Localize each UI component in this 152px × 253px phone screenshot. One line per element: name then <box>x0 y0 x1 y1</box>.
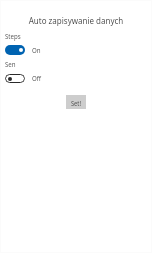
button[interactable]: Steps switch, On <box>5 45 42 55</box>
staticText: Off <box>32 74 41 83</box>
staticText: On <box>32 46 41 55</box>
button[interactable]: Set! <box>66 95 86 109</box>
button[interactable]: Sen switch, Off <box>5 74 42 83</box>
staticText: Sen <box>5 60 16 69</box>
staticText: Auto zapisywanie danych <box>0 15 152 26</box>
staticText: Set! <box>71 99 81 108</box>
staticText: Steps <box>5 32 21 41</box>
